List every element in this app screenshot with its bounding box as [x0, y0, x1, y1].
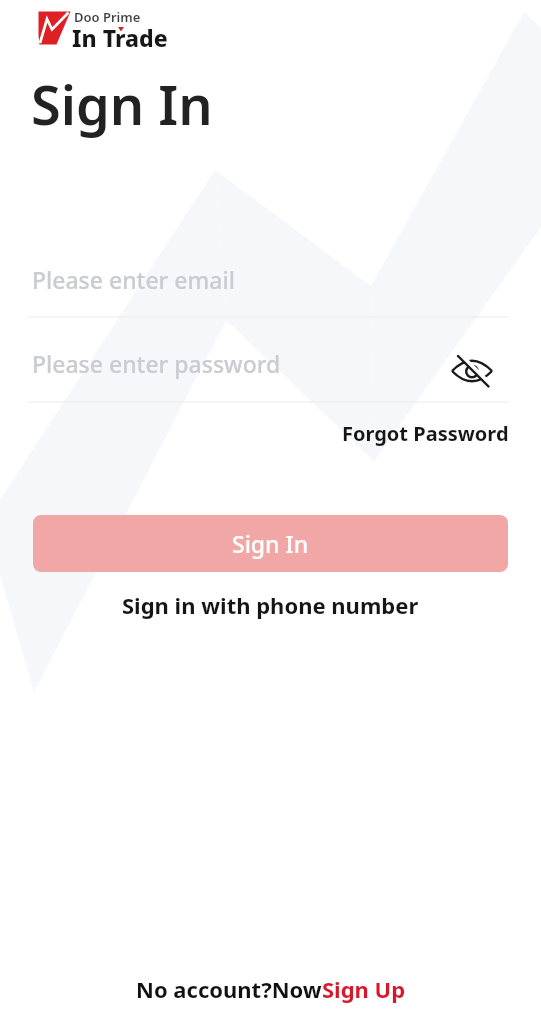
button[interactable]: Sign In — [33, 515, 508, 572]
staticText: Please enter password — [32, 348, 281, 379]
staticText: Sign In — [232, 528, 309, 559]
staticText: Sign In — [31, 67, 213, 141]
staticText: In Trade — [72, 22, 168, 53]
button[interactable]: Forgot Password — [342, 420, 509, 447]
button[interactable]: Please enter email — [28, 262, 509, 317]
button[interactable] — [448, 350, 494, 392]
button[interactable]: Please enter password — [28, 348, 509, 402]
staticText: Please enter email — [32, 264, 235, 295]
staticText: Doo Prime — [74, 8, 141, 26]
staticText: No account?Now — [136, 974, 322, 1004]
button[interactable]: Sign Up — [322, 974, 406, 1004]
button[interactable]: Sign in with phone number — [122, 590, 419, 620]
